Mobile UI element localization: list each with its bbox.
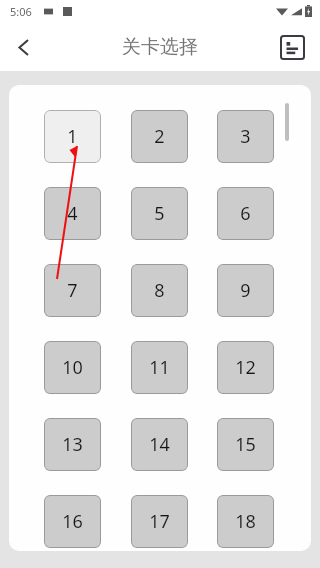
staticText: 17 [149, 509, 170, 534]
button[interactable]: 16 [44, 495, 101, 548]
button[interactable]: 15 [217, 418, 274, 471]
staticText: 5 [154, 201, 165, 226]
staticText: 11 [149, 355, 170, 380]
button[interactable]: 10 [44, 341, 101, 394]
button[interactable]: 3 [217, 110, 274, 163]
staticText: 2 [154, 124, 165, 149]
button[interactable]: Level list [271, 26, 313, 68]
staticText: 7 [67, 278, 78, 303]
staticText: 关卡选择 [122, 35, 198, 59]
staticText: 13 [62, 432, 83, 457]
staticText: 15 [235, 432, 256, 457]
staticText: 9 [240, 278, 251, 303]
button[interactable]: 2 [131, 110, 188, 163]
button[interactable]: 18 [217, 495, 274, 548]
staticText: 6 [240, 201, 251, 226]
staticText: 18 [235, 509, 256, 534]
button[interactable]: 7 [44, 264, 101, 317]
staticText: 12 [235, 355, 256, 380]
button[interactable]: 1 [44, 110, 101, 163]
staticText: 8 [154, 278, 165, 303]
staticText: 16 [62, 509, 83, 534]
button[interactable]: 5 [131, 187, 188, 240]
staticText: 4 [67, 201, 78, 226]
button[interactable]: 4 [44, 187, 101, 240]
staticText: 3 [240, 124, 251, 149]
button[interactable]: 6 [217, 187, 274, 240]
staticText: 14 [149, 432, 170, 457]
button[interactable]: Back [0, 24, 46, 70]
button[interactable]: 13 [44, 418, 101, 471]
button[interactable]: 12 [217, 341, 274, 394]
staticText: 1 [67, 124, 78, 149]
button[interactable]: 9 [217, 264, 274, 317]
button[interactable]: 14 [131, 418, 188, 471]
button[interactable]: 11 [131, 341, 188, 394]
button[interactable]: 8 [131, 264, 188, 317]
staticText: 5:06 [10, 4, 32, 19]
button[interactable]: 17 [131, 495, 188, 548]
staticText: 10 [62, 355, 83, 380]
